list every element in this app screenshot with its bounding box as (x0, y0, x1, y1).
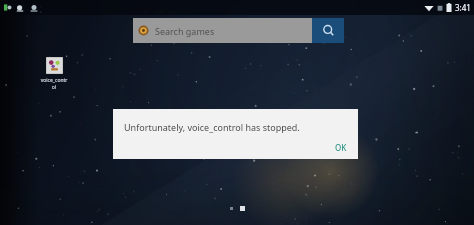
staticText: Search games (155, 25, 215, 37)
button[interactable]: Search games (133, 18, 344, 43)
staticText: OK (335, 142, 347, 153)
staticText: voice_control (40, 77, 68, 91)
button[interactable]: voice_control (40, 57, 68, 91)
button[interactable]: Search (312, 18, 344, 43)
button[interactable]: OK (329, 140, 353, 155)
staticText: 3:41 (455, 2, 471, 13)
staticText: Unfortunately, voice_control has stopped… (124, 121, 300, 133)
